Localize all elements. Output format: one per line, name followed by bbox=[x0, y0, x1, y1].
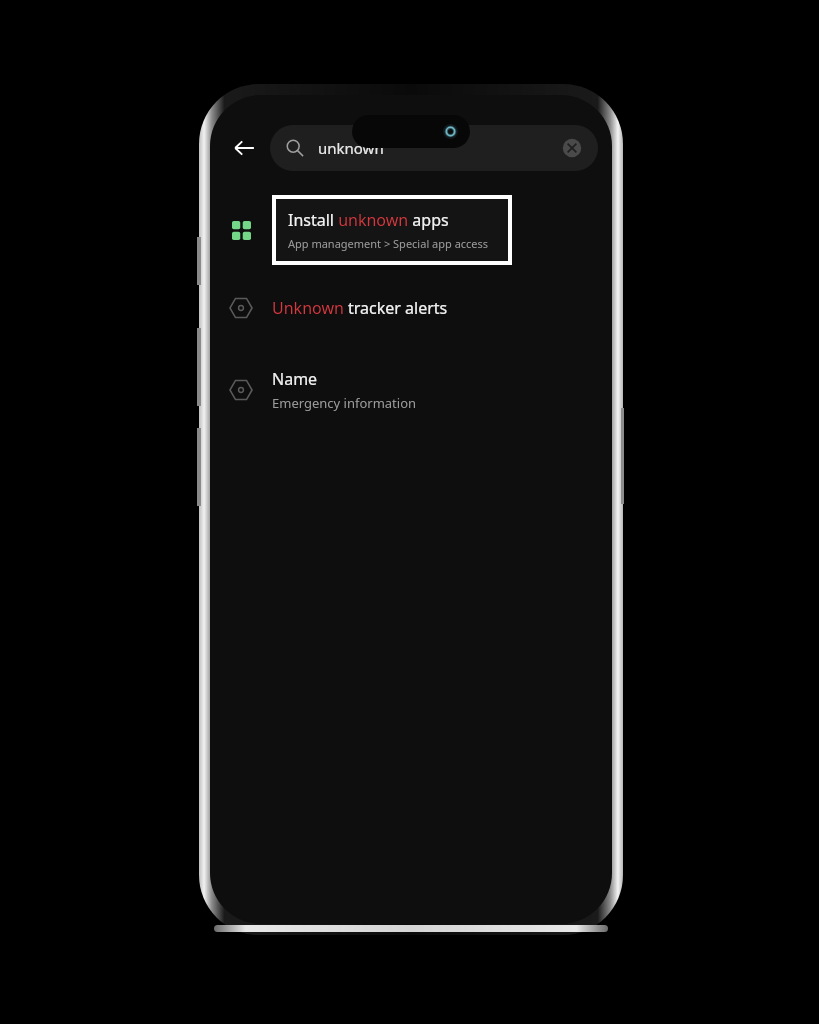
button[interactable]: Clear bbox=[554, 130, 590, 166]
button[interactable]: Unknown tracker alerts bbox=[210, 279, 612, 337]
staticText: App management > Special app access bbox=[288, 236, 489, 251]
staticText: Unknown tracker alerts bbox=[272, 297, 448, 319]
button[interactable]: unknown bbox=[270, 125, 598, 171]
staticText: Emergency information bbox=[272, 394, 417, 412]
staticText: Install unknown apps bbox=[288, 209, 449, 231]
staticText: Name bbox=[272, 368, 318, 390]
button[interactable]: Name bbox=[210, 357, 612, 423]
staticText: unknown bbox=[318, 138, 384, 158]
button[interactable]: Install unknown apps bbox=[210, 191, 612, 269]
button[interactable]: Back bbox=[222, 126, 266, 170]
